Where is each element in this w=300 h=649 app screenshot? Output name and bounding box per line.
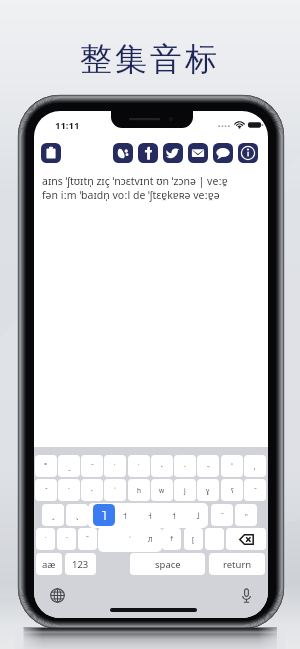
- staticText: ˦: [172, 509, 176, 521]
- staticText: 整集音标: [0, 39, 300, 79]
- button[interactable]: Clipboard: [41, 143, 61, 163]
- button[interactable]: w: [151, 479, 173, 501]
- staticText: ˧: [148, 509, 152, 521]
- button[interactable]: aæ: [36, 553, 62, 575]
- button[interactable]: ˙: [104, 455, 126, 477]
- button[interactable]: ˌ: [244, 455, 266, 477]
- button[interactable]: ˰: [42, 504, 64, 526]
- button[interactable]: ˅: [104, 479, 126, 501]
- button[interactable]: 123: [65, 553, 96, 575]
- button[interactable]: Tone key: [93, 504, 115, 526]
- staticText: ˝: [86, 535, 89, 544]
- staticText: ʕ: [231, 486, 234, 495]
- staticText: ɣ: [206, 486, 210, 495]
- staticText: ˵: [207, 462, 210, 471]
- button[interactable]: ˋ: [58, 479, 80, 501]
- button[interactable]: Message: [213, 143, 233, 163]
- staticText: ˙: [45, 535, 47, 544]
- staticText: space: [155, 558, 181, 571]
- button[interactable]: j: [174, 479, 196, 501]
- staticText: ˌ: [254, 462, 256, 471]
- staticText: Л: [148, 535, 153, 544]
- staticText: ˰: [52, 511, 55, 520]
- staticText: ˟: [231, 462, 233, 471]
- staticText: return: [223, 558, 252, 571]
- button[interactable]: ˝: [78, 528, 97, 550]
- staticText: ˆ: [45, 486, 48, 495]
- staticText: ˷: [68, 462, 71, 471]
- staticText: [: [192, 535, 195, 544]
- staticText: 11:11: [55, 119, 80, 132]
- staticText: ˅: [114, 486, 116, 495]
- staticText: w: [159, 486, 165, 495]
- staticText: ⁿ: [245, 511, 248, 520]
- button[interactable]: [: [184, 528, 203, 550]
- staticText: ˭: [44, 462, 48, 471]
- button[interactable]: Mail: [188, 143, 208, 163]
- staticText: ˦: [123, 509, 127, 521]
- button[interactable]: [88, 503, 208, 528]
- staticText: ˗: [184, 462, 186, 471]
- staticText: ˖: [161, 462, 163, 471]
- button[interactable]: h: [128, 479, 150, 501]
- button[interactable]: ˙: [36, 528, 55, 550]
- button[interactable]: ˜: [81, 455, 103, 477]
- button[interactable]: ˖: [151, 455, 173, 477]
- staticText: ˙: [114, 462, 116, 471]
- button[interactable]: ↑: [162, 528, 181, 550]
- staticText: ˖: [91, 486, 93, 495]
- button[interactable]: Dictate: [241, 588, 252, 603]
- button[interactable]: ˖: [81, 479, 103, 501]
- button[interactable]: Delete: [226, 528, 266, 550]
- button[interactable]: ˟: [221, 455, 243, 477]
- button[interactable]: Twitter: [163, 143, 183, 163]
- staticText: ˜: [221, 511, 224, 520]
- button[interactable]: return: [209, 553, 265, 575]
- staticText: ↑: [169, 535, 175, 543]
- staticText: ˙: [138, 462, 140, 471]
- button[interactable]: Switch keyboard: [50, 588, 65, 603]
- staticText: ˜: [91, 462, 94, 471]
- button[interactable]: ˷: [58, 455, 80, 477]
- button[interactable]: [205, 528, 224, 550]
- button[interactable]: Л: [141, 528, 160, 550]
- staticText: h: [137, 486, 142, 495]
- staticText: ˩: [196, 509, 200, 521]
- button[interactable]: ɣ: [197, 479, 219, 501]
- button[interactable]: ⁿ: [235, 504, 257, 526]
- button[interactable]: [98, 527, 162, 552]
- staticText: ˯: [76, 511, 79, 520]
- button[interactable]: ˆ: [35, 479, 57, 501]
- staticText: ˥: [101, 506, 107, 524]
- button[interactable]: ˙: [128, 455, 150, 477]
- button[interactable]: Info: [238, 143, 258, 163]
- button[interactable]: Evernote: [113, 143, 133, 163]
- button[interactable]: ʕ: [221, 479, 243, 501]
- button[interactable]: Facebook: [138, 143, 158, 163]
- button[interactable]: space: [130, 553, 205, 575]
- staticText: fən iːm ˈbaɪdn̩ voːl de ˈʃtɛɐ̯kɐʀə veːɐ̯…: [42, 188, 220, 202]
- button[interactable]: ˗: [174, 455, 196, 477]
- staticText: ˅: [129, 535, 131, 544]
- staticText: 123: [72, 558, 89, 571]
- button[interactable]: ˭: [35, 455, 57, 477]
- button[interactable]: ˋ: [57, 528, 76, 550]
- button[interactable]: ˜: [211, 504, 233, 526]
- staticText: ˜: [254, 486, 257, 495]
- staticText: aæ: [42, 558, 56, 571]
- staticText: aɪns ˈʃtʊɪtn̩ zɪç ˈnɔɛtvɪnt ʊn ˈzɔnə | v…: [42, 174, 228, 188]
- staticText: ˋ: [66, 535, 68, 544]
- staticText: ˋ: [68, 486, 70, 495]
- button[interactable]: ˯: [66, 504, 88, 526]
- staticText: j: [184, 486, 186, 495]
- button[interactable]: ˜: [244, 479, 266, 501]
- button[interactable]: ˵: [197, 455, 219, 477]
